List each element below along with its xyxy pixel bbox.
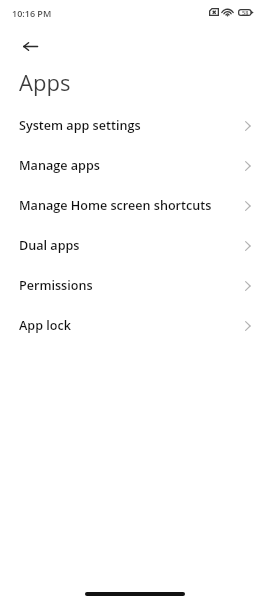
staticText: 58 [242, 9, 249, 16]
staticText: 10:16 PM [12, 7, 52, 19]
staticText: Permissions [19, 277, 93, 294]
staticText: Dual apps [19, 237, 80, 254]
button[interactable]: Manage Home screen shortcuts [0, 185, 270, 225]
staticText: System app settings [19, 117, 141, 134]
staticText: Manage Home screen shortcuts [19, 197, 212, 214]
button[interactable]: System app settings [0, 105, 270, 145]
staticText: Manage apps [19, 157, 100, 174]
staticText: Apps [19, 67, 71, 97]
button[interactable]: Dual apps [0, 225, 270, 265]
button[interactable]: Permissions [0, 265, 270, 305]
button[interactable]: App lock [0, 305, 270, 345]
staticText: App lock [19, 317, 71, 334]
button[interactable]: Manage apps [0, 145, 270, 185]
button[interactable]: Back [8, 32, 52, 60]
